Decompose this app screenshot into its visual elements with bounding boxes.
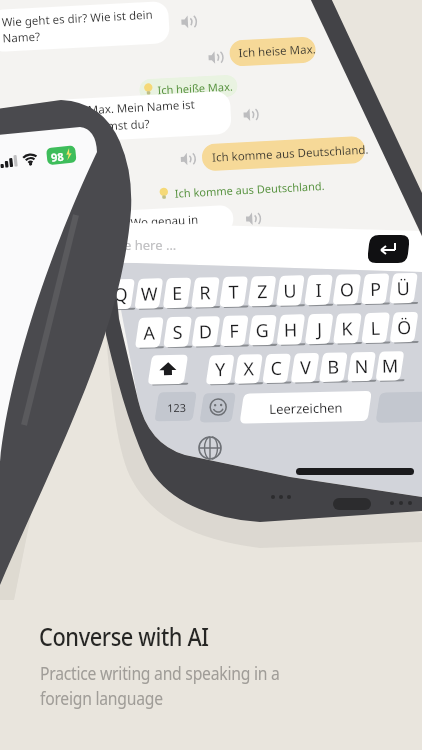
button[interactable] (0, 0, 422, 750)
